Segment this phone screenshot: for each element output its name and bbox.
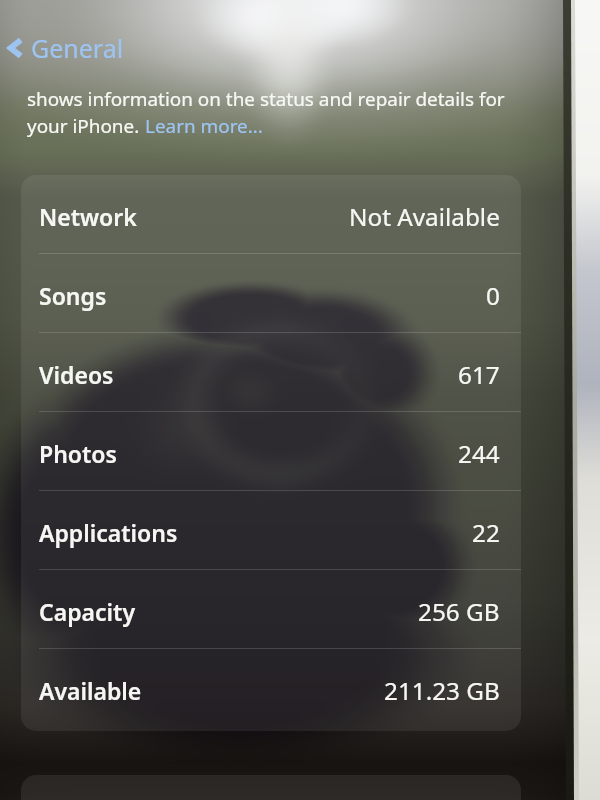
staticText: Photos	[39, 438, 117, 469]
staticText: Capacity	[39, 596, 135, 627]
button[interactable]: Back	[3, 31, 124, 65]
staticText: shows information on the status and repa…	[27, 86, 505, 112]
button[interactable]: Songs	[21, 254, 521, 333]
staticText: Not Available	[349, 200, 500, 233]
button[interactable]: Learn more...	[145, 113, 263, 139]
staticText: Songs	[39, 280, 107, 311]
staticText: your iPhone.	[27, 113, 145, 139]
staticText: Network	[39, 201, 137, 232]
staticText: 0	[486, 279, 500, 312]
button[interactable]: Network	[21, 175, 521, 254]
staticText: 256 GB	[418, 595, 500, 628]
button[interactable]: Photos	[21, 412, 521, 491]
button[interactable]: Capacity	[21, 570, 521, 649]
button[interactable]: Videos	[21, 333, 521, 412]
button[interactable]: Available	[21, 649, 521, 728]
staticText: 244	[458, 437, 500, 470]
staticText: General	[31, 31, 124, 65]
other: Back	[3, 32, 27, 64]
button[interactable]: Applications	[21, 491, 521, 570]
staticText: Available	[39, 675, 142, 706]
staticText: Videos	[39, 359, 114, 390]
staticText: 211.23 GB	[384, 674, 500, 707]
staticText: 22	[472, 516, 500, 549]
staticText: Applications	[39, 517, 178, 548]
staticText: 617	[458, 358, 500, 391]
